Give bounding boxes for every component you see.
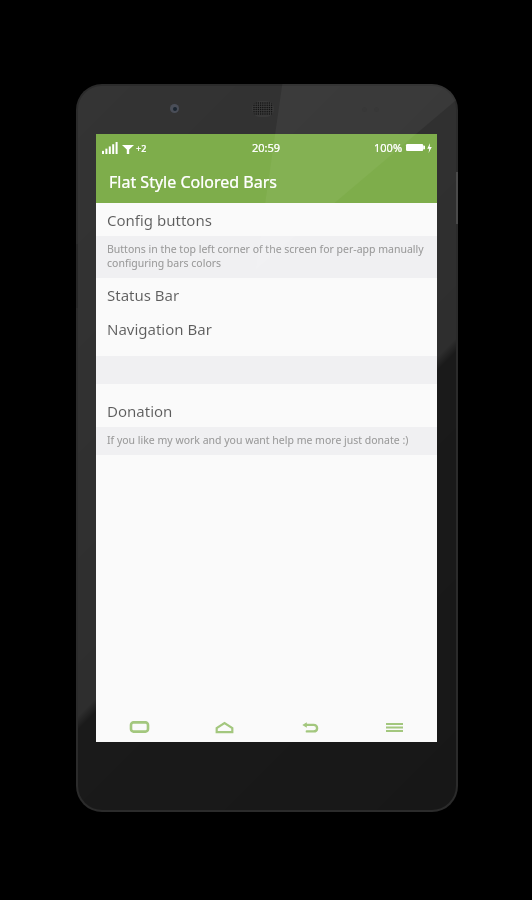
button[interactable]: If you like my work and you want help me… xyxy=(96,427,437,455)
staticText: Navigation Bar xyxy=(107,319,212,339)
button[interactable]: Donation xyxy=(96,394,437,427)
staticText: 100% xyxy=(374,140,403,155)
button[interactable]: Back xyxy=(267,712,352,742)
button[interactable]: Config buttons xyxy=(96,203,437,236)
button[interactable]: Status Bar xyxy=(96,278,437,312)
button[interactable]: Navigation Bar xyxy=(96,312,437,346)
staticText: Donation xyxy=(107,401,173,421)
button[interactable]: Home xyxy=(182,712,267,742)
staticText: +2 xyxy=(136,142,147,154)
staticText: Buttons in the top left corner of the sc… xyxy=(107,242,426,270)
staticText: Status Bar xyxy=(107,285,180,305)
button[interactable]: Recent apps xyxy=(96,712,182,742)
button[interactable]: Menu xyxy=(352,712,437,742)
staticText: If you like my work and you want help me… xyxy=(107,433,409,447)
staticText: Config buttons xyxy=(107,210,212,230)
staticText: Flat Style Colored Bars xyxy=(109,171,277,193)
staticText: 20:59 xyxy=(252,140,281,155)
button[interactable]: Buttons in the top left corner of the sc… xyxy=(96,236,437,278)
